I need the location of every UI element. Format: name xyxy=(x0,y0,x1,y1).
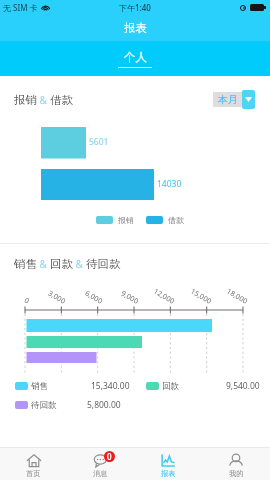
staticText: 9,540.00 xyxy=(226,380,260,392)
staticText: 待回款 xyxy=(31,400,57,411)
button[interactable]: 报表 xyxy=(134,448,202,480)
staticText: & xyxy=(37,93,50,107)
staticText: 无 SIM 卡 xyxy=(3,2,38,13)
staticText: 待回款 xyxy=(86,257,121,271)
staticText: 0 xyxy=(23,295,32,306)
staticText: 9,000 xyxy=(119,288,141,306)
button[interactable]: 首页 xyxy=(0,448,67,480)
staticText: 消息 xyxy=(93,469,108,478)
staticText: 5,800.00 xyxy=(87,399,121,411)
button[interactable]: 本月 xyxy=(213,90,255,109)
staticText: & xyxy=(37,257,50,271)
staticText: 报销 xyxy=(14,93,37,107)
button[interactable]: 个人 xyxy=(118,50,152,68)
staticText: 14030 xyxy=(157,178,182,190)
staticText: 借款 xyxy=(168,215,184,225)
staticText: 18,000 xyxy=(225,286,250,306)
staticText: 销售 xyxy=(31,381,48,392)
staticText: 个人 xyxy=(124,50,147,64)
button[interactable]: 我的 xyxy=(202,448,270,480)
staticText: 报表 xyxy=(161,469,176,478)
staticText: 报表 xyxy=(124,21,147,35)
staticText: & xyxy=(73,257,86,271)
staticText: 首页 xyxy=(26,469,41,478)
staticText: 0 xyxy=(107,451,112,462)
staticText: 15,340.00 xyxy=(91,380,130,392)
staticText: 报销 xyxy=(118,215,134,225)
staticText: 本月 xyxy=(218,93,238,106)
staticText: 3,000 xyxy=(46,288,68,306)
staticText: 12,000 xyxy=(152,286,177,306)
staticText: 15,000 xyxy=(189,286,214,306)
staticText: 5601 xyxy=(89,136,109,148)
staticText: 销售 xyxy=(14,257,37,271)
staticText: 6,000 xyxy=(83,288,105,306)
staticText: 下午1:40 xyxy=(119,2,151,13)
staticText: 我的 xyxy=(229,469,244,478)
staticText: 回款 xyxy=(162,381,179,392)
staticText: 回款 xyxy=(50,257,73,271)
button[interactable]: 消息 xyxy=(67,448,134,480)
staticText: 借款 xyxy=(50,93,73,107)
